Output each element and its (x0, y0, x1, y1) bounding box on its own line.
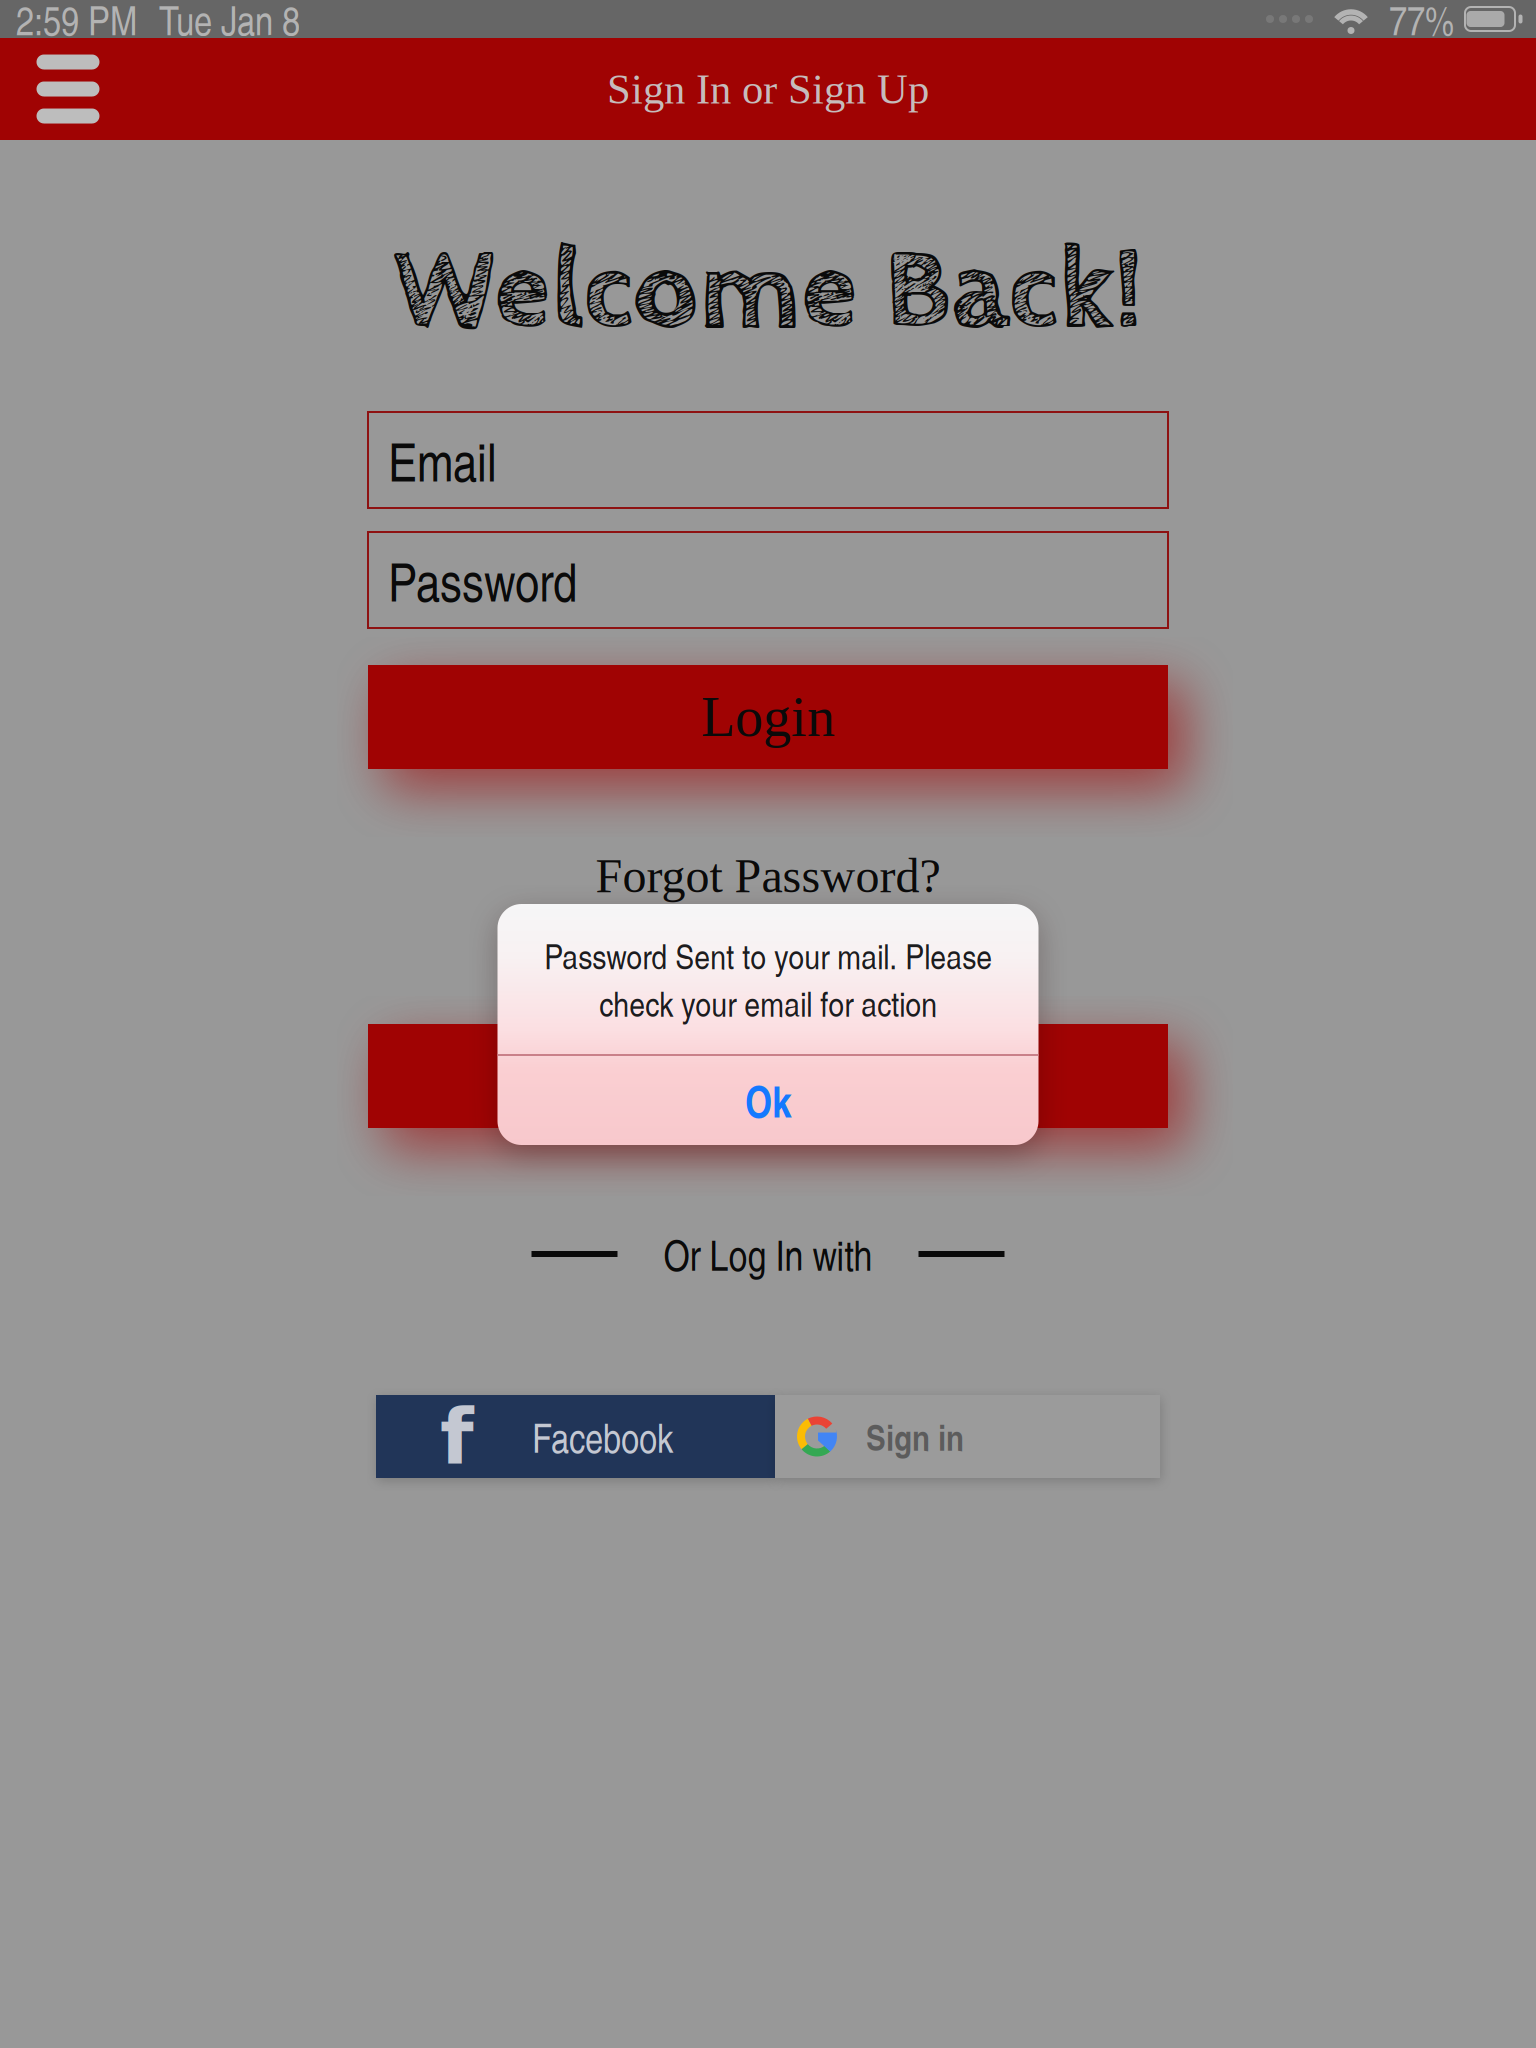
button[interactable]: Sign in (775, 1395, 1160, 1478)
staticText: Password Sent to your mail. Please check… (544, 931, 992, 1027)
staticText: Login (701, 686, 835, 748)
staticText: Tue Jan 8 (159, 0, 300, 46)
button[interactable]: Menu (0, 38, 136, 140)
staticText: Or Log In with (663, 1226, 872, 1282)
staticText: Email (388, 423, 497, 496)
staticText: Password (388, 543, 577, 616)
staticText: f (440, 1391, 474, 1481)
button[interactable]: Forgot Password? (595, 841, 940, 911)
button[interactable]: f (376, 1395, 775, 1478)
staticText: Ok (745, 1070, 791, 1131)
staticText: Facebook (532, 1409, 673, 1464)
staticText: Sign In or Sign Up (607, 65, 929, 113)
staticText: 77% (1389, 0, 1454, 46)
button[interactable]: Ok (497, 1056, 1038, 1145)
staticText: 2:59 PM (16, 0, 137, 46)
staticText: Sign in (866, 1411, 964, 1462)
staticText: Sign Up (675, 1045, 860, 1107)
button[interactable]: Login (368, 665, 1168, 769)
staticText: Welcome Back! (393, 225, 1143, 359)
staticText: Forgot Password? (595, 849, 940, 903)
button[interactable]: Sign Up (368, 1024, 1168, 1128)
